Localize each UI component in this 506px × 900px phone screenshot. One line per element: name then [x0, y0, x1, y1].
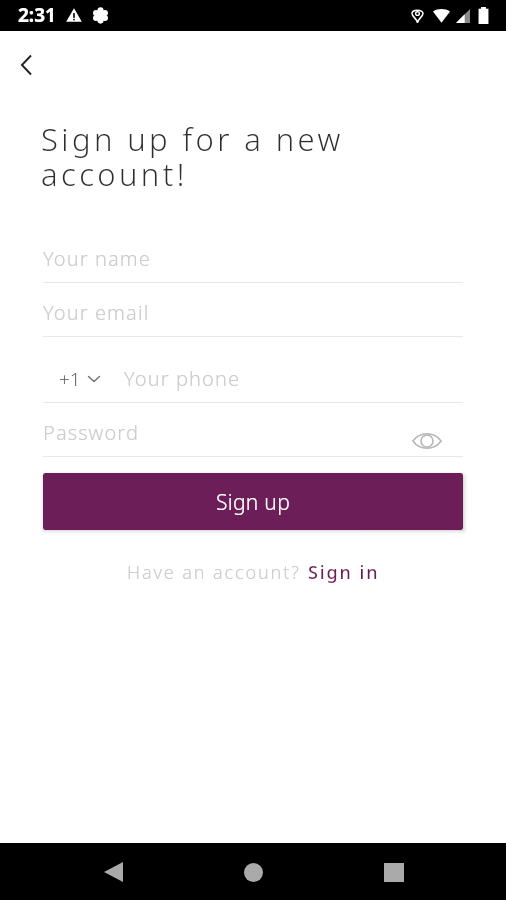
- staticText: Your phone: [124, 365, 241, 392]
- staticText: Sign up: [216, 488, 291, 517]
- button[interactable]: Your email: [43, 297, 463, 337]
- button[interactable]: +1: [43, 366, 106, 392]
- button[interactable]: Recent apps: [372, 850, 416, 894]
- staticText: Sign up for a new account!: [41, 118, 344, 196]
- button[interactable]: Back: [91, 850, 135, 894]
- button[interactable]: Sign in: [308, 560, 380, 585]
- button[interactable]: Your name: [43, 243, 463, 283]
- button[interactable]: Back: [6, 45, 46, 85]
- staticText: Have an account?: [127, 560, 308, 585]
- button[interactable]: Sign up: [43, 473, 463, 530]
- staticText: 2:31: [18, 2, 56, 28]
- button[interactable]: Home: [231, 850, 275, 894]
- staticText: Sign in: [308, 560, 380, 585]
- staticText: +1: [59, 366, 81, 392]
- staticText: Password: [43, 419, 139, 446]
- staticText: Your name: [43, 245, 151, 272]
- staticText: Your email: [43, 299, 150, 326]
- button[interactable]: Show password: [407, 421, 447, 461]
